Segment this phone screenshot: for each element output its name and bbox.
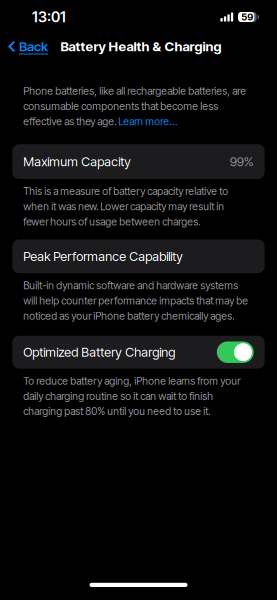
staticText: Peak Performance Capability <box>23 249 183 264</box>
button[interactable]: Maximum Capacity <box>0 144 277 179</box>
staticText: Back <box>19 38 48 54</box>
staticText: To reduce battery aging, iPhone learns f… <box>23 375 240 418</box>
staticText: 13:01 <box>32 8 66 26</box>
staticText: Maximum Capacity <box>23 154 131 169</box>
button[interactable]: Optimized Battery Charging <box>0 336 277 369</box>
staticText: Optimized Battery Charging <box>23 344 175 360</box>
staticText: 59 <box>241 11 253 23</box>
staticText: Battery Health & Charging <box>60 38 221 54</box>
button[interactable]: Back <box>0 34 54 58</box>
button[interactable]: Peak Performance Capability <box>0 239 277 273</box>
staticText: 99% <box>230 154 254 169</box>
staticText: This is a measure of battery capacity re… <box>23 185 228 228</box>
staticText: Phone batteries, like all rechargeable b… <box>23 84 246 128</box>
staticText: Built-in dynamic software and hardware s… <box>23 279 248 322</box>
